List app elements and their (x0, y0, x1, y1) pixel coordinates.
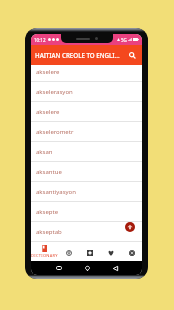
button[interactable]: aksan (31, 142, 142, 162)
button[interactable]: Settings (121, 242, 142, 261)
staticText: 5G (121, 37, 127, 43)
staticText: aksepte (36, 208, 59, 216)
staticText: DICTIONARY (31, 253, 58, 258)
button[interactable]: Search (126, 49, 138, 61)
staticText: akseptab (36, 228, 62, 236)
button[interactable]: Home (80, 261, 94, 275)
button[interactable]: Dictionary (31, 242, 58, 261)
button[interactable]: akseptab (31, 222, 142, 242)
button[interactable]: akselerometr (31, 122, 142, 142)
button[interactable]: aksantiyasyon (31, 182, 142, 202)
button[interactable]: aksepte (31, 202, 142, 222)
button[interactable]: akselerasyon (31, 82, 142, 102)
button[interactable]: aksantue (31, 162, 142, 182)
button[interactable]: Back (108, 261, 122, 275)
staticText: akselere (36, 108, 60, 116)
staticText: akselerometr (36, 128, 74, 136)
staticText: akselerasyon (36, 88, 73, 96)
staticText: aksantue (36, 168, 62, 176)
staticText: 10:12 (34, 37, 46, 43)
staticText: aksantiyasyon (36, 188, 76, 196)
staticText: HAITIAN CREOLE TO ENGLI... (35, 51, 126, 59)
staticText: aksan (36, 148, 53, 156)
staticText: akselere (36, 68, 60, 76)
button[interactable]: akselere (31, 65, 142, 82)
button[interactable]: Help (58, 242, 79, 261)
button[interactable]: Recents (52, 261, 66, 275)
button[interactable]: akselere (31, 102, 142, 122)
button[interactable]: Favorites (100, 242, 121, 261)
button[interactable]: Scroll to top (125, 222, 135, 232)
button[interactable]: Categories (79, 242, 100, 261)
